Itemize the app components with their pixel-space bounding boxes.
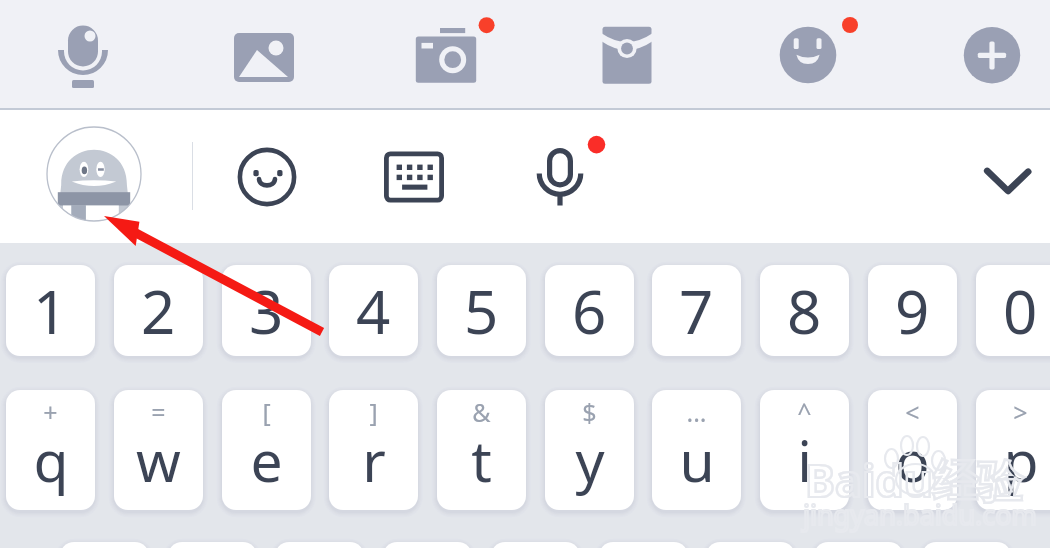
button[interactable]: * (168, 542, 257, 548)
button[interactable]: 5 (437, 265, 526, 356)
staticText: i (797, 421, 812, 499)
button[interactable]: ^ (760, 390, 849, 510)
staticText: 7 (679, 270, 714, 352)
staticText: ] (369, 395, 378, 429)
button[interactable]: More (938, 0, 1046, 108)
staticText: [ (262, 395, 271, 429)
button[interactable]: * (814, 542, 903, 548)
staticText: 8 (787, 270, 822, 352)
staticText: 0 (1003, 270, 1038, 352)
staticText: + (43, 395, 58, 429)
button[interactable]: Voice input (29, 0, 137, 108)
button[interactable]: Collapse keyboard (968, 140, 1048, 220)
button[interactable]: [ (222, 390, 311, 510)
staticText: 1 (33, 270, 68, 352)
button[interactable]: Avatar (46, 126, 142, 222)
button[interactable]: 8 (760, 265, 849, 356)
staticText: p (1003, 421, 1039, 499)
button[interactable]: 9 (868, 265, 957, 356)
button[interactable]: Voice (515, 137, 605, 227)
staticText: < (905, 395, 920, 429)
button[interactable]: Emoji (754, 0, 862, 108)
button[interactable]: 7 (652, 265, 741, 356)
staticText: t (471, 421, 492, 499)
staticText: ^ (797, 395, 812, 429)
button[interactable]: Keyboard (376, 139, 452, 215)
button[interactable]: < (868, 390, 957, 510)
staticText: 4 (356, 270, 391, 352)
button[interactable]: + (6, 390, 95, 510)
button[interactable]: * (599, 542, 688, 548)
staticText: e (250, 421, 283, 499)
button[interactable]: = (114, 390, 203, 510)
staticText: $ (582, 395, 597, 429)
button[interactable]: * (275, 542, 364, 548)
button[interactable]: Red packet (573, 0, 681, 108)
button[interactable]: * (491, 542, 580, 548)
button[interactable]: 3 (222, 265, 311, 356)
button[interactable]: & (437, 390, 526, 510)
staticText: w (136, 421, 181, 499)
staticText: u (679, 421, 715, 499)
staticText: > (1013, 395, 1028, 429)
staticText: 5 (464, 270, 499, 352)
staticText: 2 (141, 270, 176, 352)
staticText: Baidu经验 (805, 449, 1024, 510)
button[interactable]: * (706, 542, 795, 548)
button[interactable]: * (922, 542, 1011, 548)
button[interactable]: $ (545, 390, 634, 510)
button[interactable]: 1 (6, 265, 95, 356)
button[interactable]: 2 (114, 265, 203, 356)
button[interactable]: Gallery (210, 0, 318, 108)
staticText: jingyan.baidu.com (803, 496, 1037, 533)
button[interactable]: Emoji (229, 139, 305, 215)
button[interactable]: ] (329, 390, 418, 510)
staticText: 3 (249, 270, 284, 352)
staticText: o (895, 421, 930, 499)
button[interactable]: 0 (976, 265, 1050, 356)
staticText: 9 (895, 270, 930, 352)
button[interactable]: * (383, 542, 472, 548)
button[interactable]: 4 (329, 265, 418, 356)
button[interactable]: 6 (545, 265, 634, 356)
staticText: = (151, 395, 166, 429)
button[interactable]: ... (652, 390, 741, 510)
staticText: 6 (572, 270, 607, 352)
button[interactable]: Camera (392, 0, 500, 108)
button[interactable]: > (976, 390, 1050, 510)
staticText: q (33, 421, 69, 499)
staticText: y (575, 421, 605, 499)
staticText: & (472, 395, 491, 429)
staticText: r (362, 421, 386, 499)
button[interactable]: * (60, 542, 149, 548)
staticText: ... (686, 395, 707, 429)
